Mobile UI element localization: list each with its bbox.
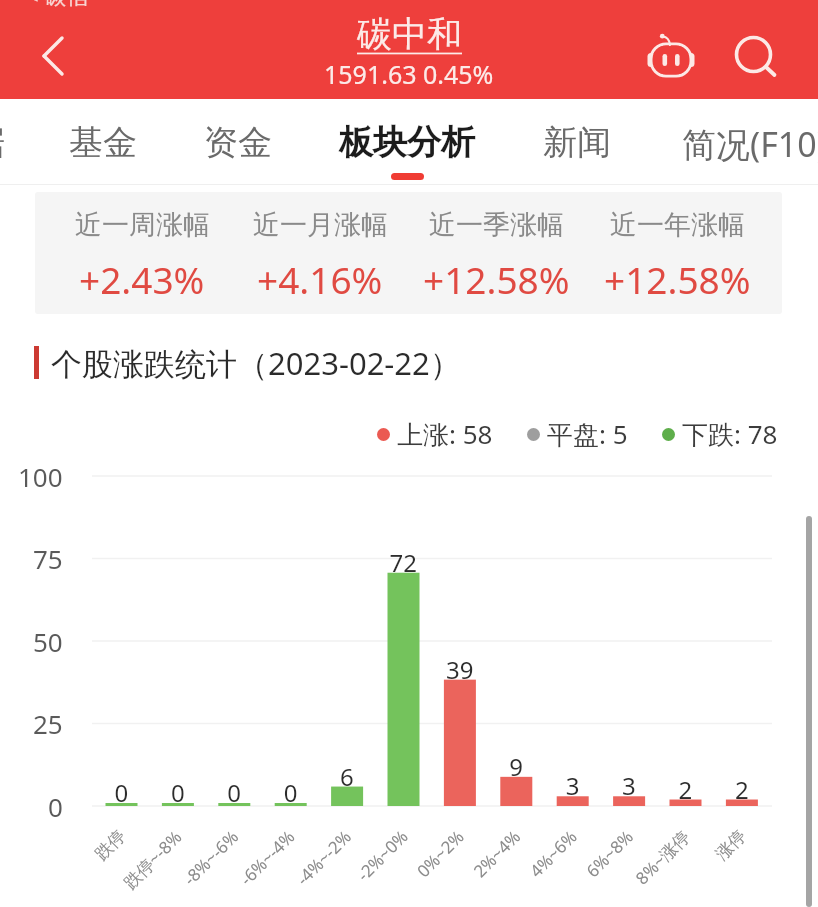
staticText: 近一年涨幅 <box>610 208 745 242</box>
button[interactable]: 基金 <box>8 99 198 185</box>
staticText: 新闻 <box>543 121 611 164</box>
staticText: 碳中和 <box>357 12 462 56</box>
staticText: 基金 <box>69 121 137 164</box>
button[interactable]: Search <box>727 28 783 84</box>
button[interactable]: 简况(F10) <box>659 99 818 185</box>
button[interactable]: 近一季涨幅 <box>386 208 606 304</box>
staticText: < 碳信 <box>26 0 89 10</box>
staticText: 近一季涨幅 <box>429 208 564 242</box>
staticText: 数据 <box>0 121 5 164</box>
staticText: 近一月涨幅 <box>253 208 388 242</box>
staticText: 资金 <box>204 121 272 164</box>
button[interactable]: 新闻 <box>482 99 672 185</box>
button[interactable]: 资金 <box>143 99 333 185</box>
staticText: +2.43% <box>79 254 205 304</box>
button[interactable]: 近一周涨幅 <box>32 208 252 304</box>
button[interactable]: 数据 <box>0 99 66 185</box>
staticText: 近一周涨幅 <box>75 208 210 242</box>
staticText: 1591.63 0.45% <box>324 57 494 91</box>
staticText: 板块分析 <box>339 121 475 164</box>
staticText: +4.16% <box>257 254 383 304</box>
staticText: 简况(F10) <box>682 121 818 167</box>
staticText: +12.58% <box>423 254 570 304</box>
staticText: 平盘: 5 <box>547 416 628 452</box>
button[interactable]: 板块分析 <box>312 99 502 185</box>
staticText: 上涨: 58 <box>397 416 493 452</box>
staticText: +12.58% <box>604 254 751 304</box>
staticText: 下跌: 78 <box>682 416 778 452</box>
staticText: 个股涨跌统计（2023-02-22） <box>51 342 461 384</box>
button[interactable]: Assistant <box>640 26 702 88</box>
button[interactable]: 近一年涨幅 <box>567 208 787 304</box>
button[interactable]: Back <box>28 29 82 83</box>
button[interactable]: 近一月涨幅 <box>210 208 430 304</box>
